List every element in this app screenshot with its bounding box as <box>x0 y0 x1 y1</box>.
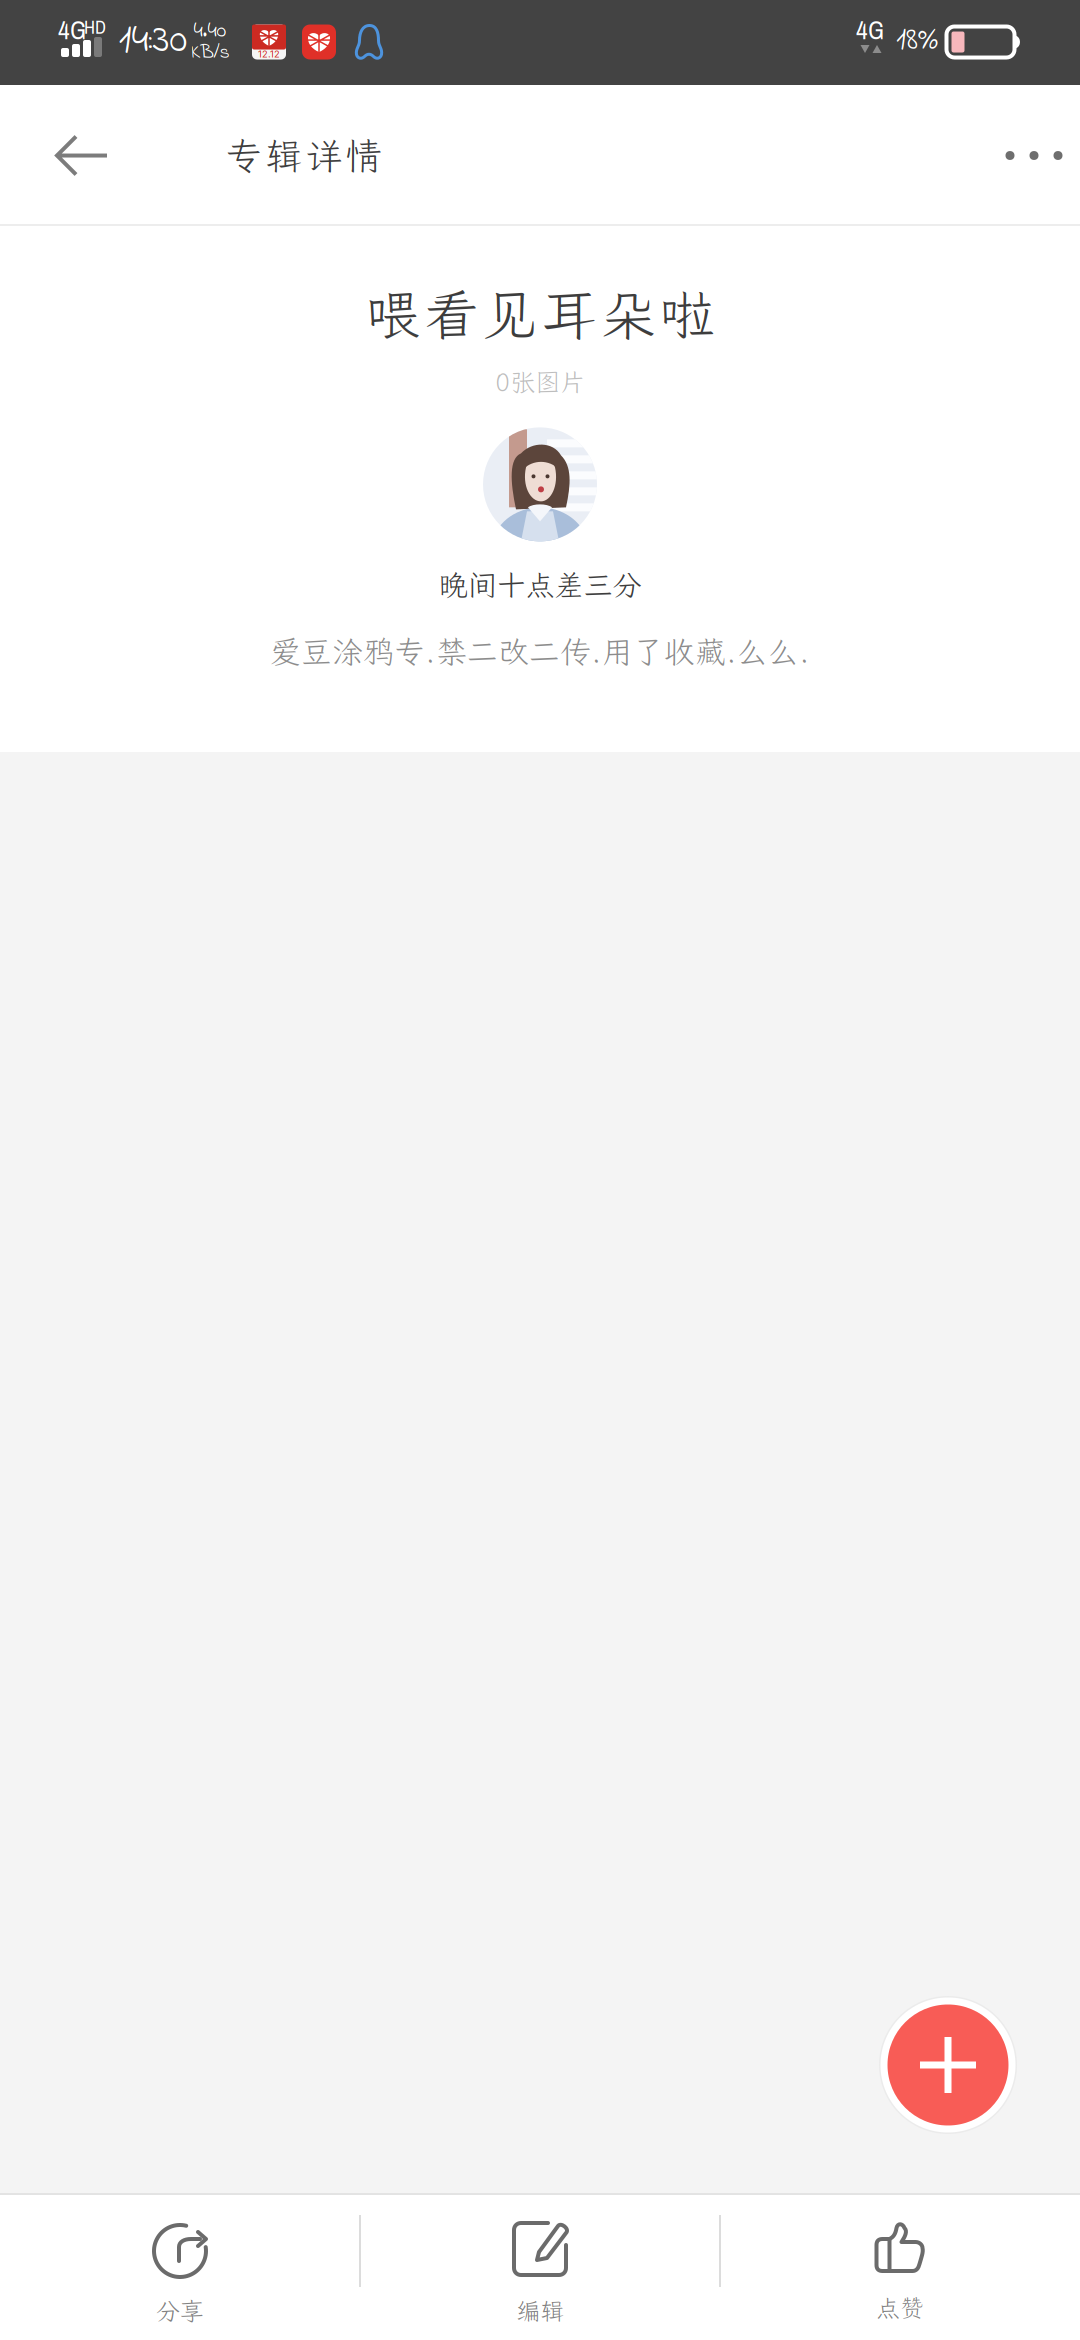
staticText: 爱豆涂鸦专.禁二改二传.用了收藏.么么. <box>270 631 810 671</box>
staticText: 0张图片 <box>495 365 585 398</box>
staticText: 点赞 <box>876 2292 924 2324</box>
staticText: KB/s <box>190 38 229 68</box>
button[interactable]: 编辑 <box>360 2193 720 2340</box>
staticText: 18% <box>896 18 938 64</box>
staticText: 4.40 <box>193 14 226 48</box>
button[interactable]: 分享 <box>0 2193 360 2340</box>
staticText: 分享 <box>156 2295 204 2327</box>
staticText: 编辑 <box>516 2295 564 2327</box>
button[interactable]: 点赞 <box>720 2193 1080 2340</box>
staticText: 4G <box>856 13 884 47</box>
staticText: 喂看见耳朵啦 <box>365 278 715 350</box>
staticText: 4G <box>58 13 86 47</box>
button[interactable]: More <box>988 85 1080 226</box>
button[interactable]: Add <box>878 1995 1018 2135</box>
staticText: 专辑详情 <box>225 131 382 180</box>
staticText: 12.12 <box>258 48 280 60</box>
staticText: 14:30 <box>118 11 187 71</box>
staticText: 晚间十点差三分 <box>438 565 641 604</box>
button[interactable]: Back <box>27 85 137 226</box>
staticText: HD <box>84 14 106 39</box>
